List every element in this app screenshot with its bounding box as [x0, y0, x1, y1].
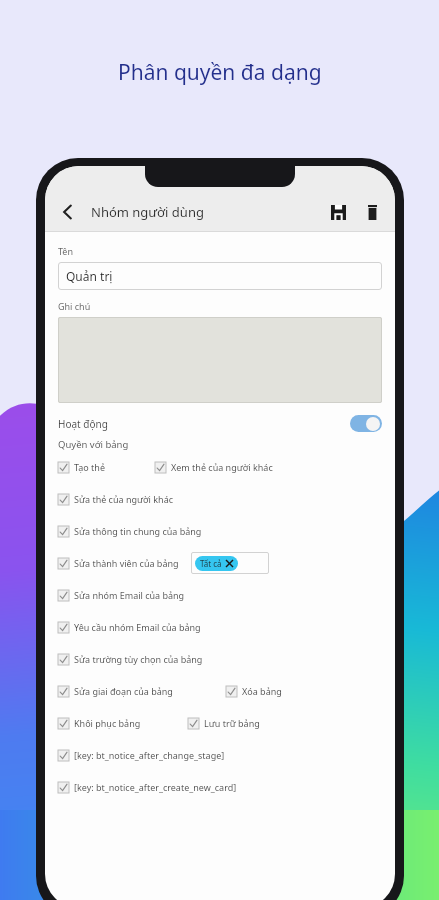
staticText: [key: bt_notice_after_create_new_card] [74, 781, 237, 793]
button[interactable]: Tất cả [191, 552, 269, 574]
staticText: Tất cả [200, 558, 222, 569]
button[interactable]: Sửa trường tùy chọn của bảng [58, 653, 382, 665]
button[interactable]: Back [51, 195, 85, 229]
staticText: Ghi chú [58, 300, 91, 312]
staticText: Yêu cầu nhóm Email của bảng [74, 621, 201, 633]
button[interactable]: Yêu cầu nhóm Email của bảng [58, 621, 382, 633]
staticText: Sửa nhóm Email của bảng [74, 589, 185, 601]
staticText: Hoạt động [58, 417, 108, 431]
button[interactable]: Sửa nhóm Email của bảng [58, 589, 382, 601]
staticText: Sửa trường tùy chọn của bảng [74, 653, 203, 665]
staticText: Tạo thẻ [74, 461, 106, 473]
button[interactable]: [key: bt_notice_after_create_new_card] [58, 781, 382, 793]
button[interactable]: Xem thẻ của người khác [155, 461, 382, 473]
button[interactable] [58, 317, 382, 403]
staticText: Xem thẻ của người khác [171, 461, 273, 473]
staticText: Phân quyền đa dạng [118, 58, 322, 87]
button[interactable]: Sửa thẻ của người khác [58, 493, 382, 505]
button[interactable]: Khôi phục bảng [58, 717, 188, 729]
button[interactable]: Sửa thông tin chung của bảng [58, 525, 382, 537]
staticText: Sửa thành viên của bảng [74, 557, 179, 569]
button[interactable]: Tạo thẻ [58, 461, 155, 473]
staticText: Sửa giai đoạn của bảng [74, 685, 173, 697]
button[interactable]: Delete [355, 195, 389, 229]
staticText: Sửa thông tin chung của bảng [74, 525, 202, 537]
button[interactable]: Sửa giai đoạn của bảng [58, 685, 226, 697]
button[interactable]: Sửa thành viên của bảng [58, 557, 179, 569]
staticText: Tên [58, 245, 74, 257]
button[interactable]: Xóa bảng [226, 685, 382, 697]
button[interactable]: Active toggle [350, 415, 382, 432]
staticText: Quản trị [66, 268, 113, 284]
staticText: Quyền với bảng [58, 438, 129, 451]
staticText: Khôi phục bảng [74, 717, 141, 729]
staticText: Xóa bảng [242, 685, 282, 697]
button[interactable]: Lưu trữ bảng [188, 717, 382, 729]
staticText: Sửa thẻ của người khác [74, 493, 174, 505]
staticText: [key: bt_notice_after_change_stage] [74, 749, 225, 761]
button[interactable]: Quản trị [58, 262, 382, 290]
staticText: Nhóm người dùng [91, 203, 204, 221]
button[interactable]: [key: bt_notice_after_change_stage] [58, 749, 382, 761]
staticText: Lưu trữ bảng [204, 717, 260, 729]
button[interactable]: Save [321, 195, 355, 229]
